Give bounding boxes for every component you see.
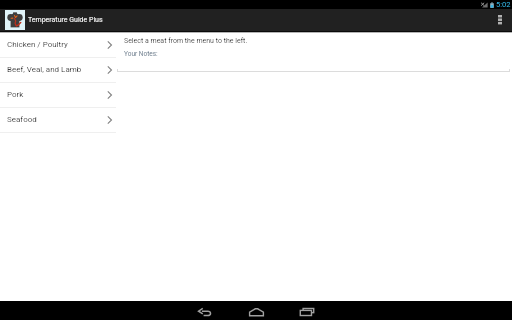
staticText: Beef, Veal, and Lamb xyxy=(7,65,82,74)
staticText: Pork xyxy=(7,90,24,99)
staticText: Seafood xyxy=(7,115,37,124)
staticText: 5:02 xyxy=(496,0,511,9)
staticText: Select a meat from the menu to the left. xyxy=(124,37,248,45)
button[interactable]: Home xyxy=(238,301,274,320)
staticText: Temperature Guide Plus xyxy=(28,16,103,24)
button[interactable]: More options xyxy=(487,9,512,31)
button[interactable]: Pork xyxy=(0,82,116,107)
button[interactable]: Beef, Veal, and Lamb xyxy=(0,57,116,82)
staticText: Chicken / Poultry xyxy=(7,40,68,49)
button[interactable]: Seafood xyxy=(0,107,116,132)
button[interactable]: Recent apps xyxy=(289,301,325,320)
button[interactable]: Chicken / Poultry xyxy=(0,32,116,57)
button[interactable]: Back xyxy=(187,301,223,320)
staticText: Your Notes: xyxy=(124,50,158,58)
